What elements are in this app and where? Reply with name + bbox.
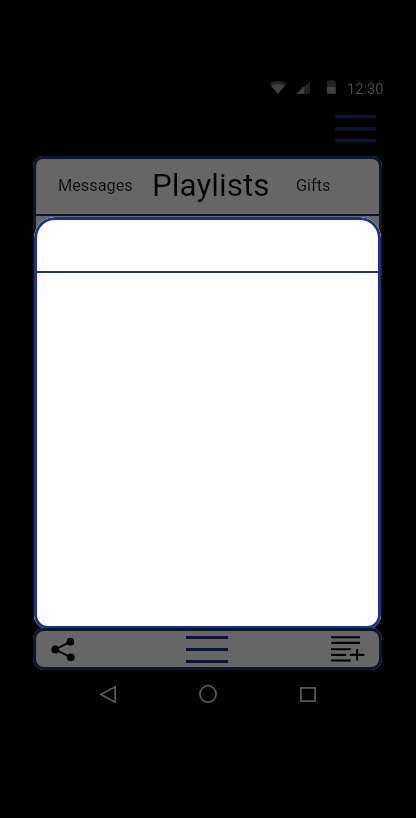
button[interactable]: Back xyxy=(86,672,130,716)
staticText: Messages xyxy=(58,176,133,195)
button[interactable]: Recent apps xyxy=(286,672,330,716)
staticText: Playlists xyxy=(152,167,270,204)
button[interactable]: Messages xyxy=(58,176,133,195)
staticText: 12:30 xyxy=(347,80,384,97)
button[interactable]: Share xyxy=(39,628,87,670)
button[interactable]: Menu list xyxy=(183,628,231,670)
button[interactable]: Home xyxy=(186,672,230,716)
button[interactable]: Add to playlist xyxy=(324,628,372,670)
staticText: Gifts xyxy=(296,176,331,195)
button[interactable]: Menu xyxy=(327,109,384,151)
button[interactable]: Gifts xyxy=(296,176,331,195)
